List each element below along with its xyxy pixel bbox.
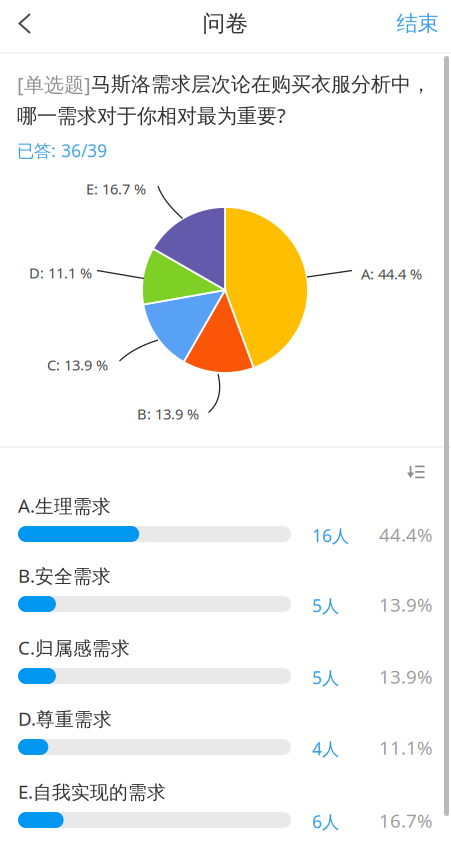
staticText: 4人 (312, 737, 339, 760)
staticText: 5人 (312, 594, 339, 617)
staticText: 44.4% (379, 522, 433, 547)
staticText: 6人 (312, 810, 339, 833)
button[interactable]: Back (0, 0, 46, 51)
staticText: B: 13.9 % (137, 404, 199, 423)
staticText: 马斯洛需求层次论在购买衣服分析中， (91, 72, 431, 97)
staticText: D: 11.1 % (29, 263, 92, 282)
staticText: 16人 (312, 524, 349, 547)
staticText: 13.9% (379, 592, 433, 617)
button[interactable]: 结束 (388, 0, 447, 47)
staticText: C: 13.9 % (47, 355, 108, 374)
staticText: [单选题] (17, 71, 91, 98)
button[interactable]: Sort (394, 455, 438, 489)
staticText: D.尊重需求 (18, 706, 112, 731)
staticText: C.归属感需求 (18, 635, 130, 660)
staticText: E.自我实现的需求 (18, 779, 166, 804)
staticText: A: 44.4 % (361, 264, 422, 283)
staticText: 问卷 (202, 10, 248, 37)
staticText: 5人 (312, 666, 339, 689)
staticText: E: 16.7 % (86, 179, 146, 198)
staticText: 已答: 36/39 (17, 139, 107, 162)
staticText: 13.9% (379, 664, 433, 689)
staticText: A.生理需求 (18, 493, 111, 518)
staticText: 11.1% (379, 735, 433, 760)
staticText: B.安全需求 (18, 563, 111, 588)
staticText: 16.7% (379, 808, 433, 833)
staticText: 哪一需求对于你相对最为重要? (17, 102, 286, 129)
staticText: 结束 (396, 10, 438, 37)
